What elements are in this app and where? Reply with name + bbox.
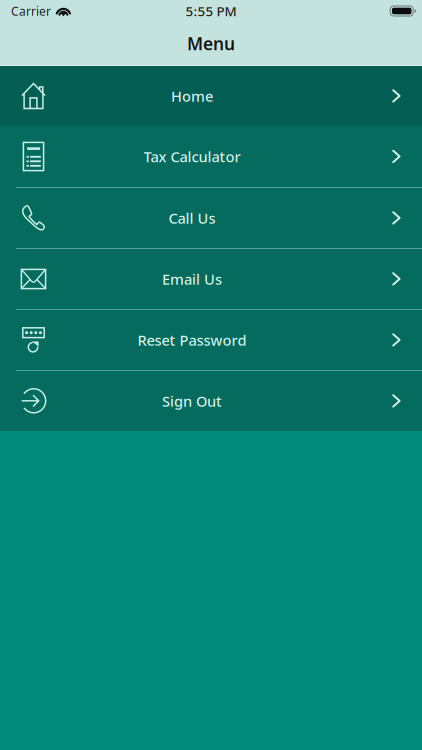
- button[interactable]: Sign Out: [0, 370, 422, 431]
- staticText: Reset Password: [137, 330, 246, 350]
- button[interactable]: Reset Password: [0, 309, 422, 370]
- button[interactable]: Call Us: [0, 187, 422, 248]
- staticText: Carrier: [11, 3, 51, 19]
- staticText: Email Us: [162, 269, 222, 289]
- staticText: Home: [171, 86, 213, 106]
- button[interactable]: Email Us: [0, 248, 422, 309]
- button[interactable]: Tax Calculator: [0, 126, 422, 187]
- staticText: Menu: [187, 32, 235, 55]
- button[interactable]: Home: [0, 66, 422, 126]
- staticText: 5:55 PM: [185, 2, 236, 20]
- staticText: Sign Out: [162, 391, 222, 411]
- staticText: Call Us: [168, 208, 215, 228]
- staticText: Tax Calculator: [143, 147, 240, 166]
